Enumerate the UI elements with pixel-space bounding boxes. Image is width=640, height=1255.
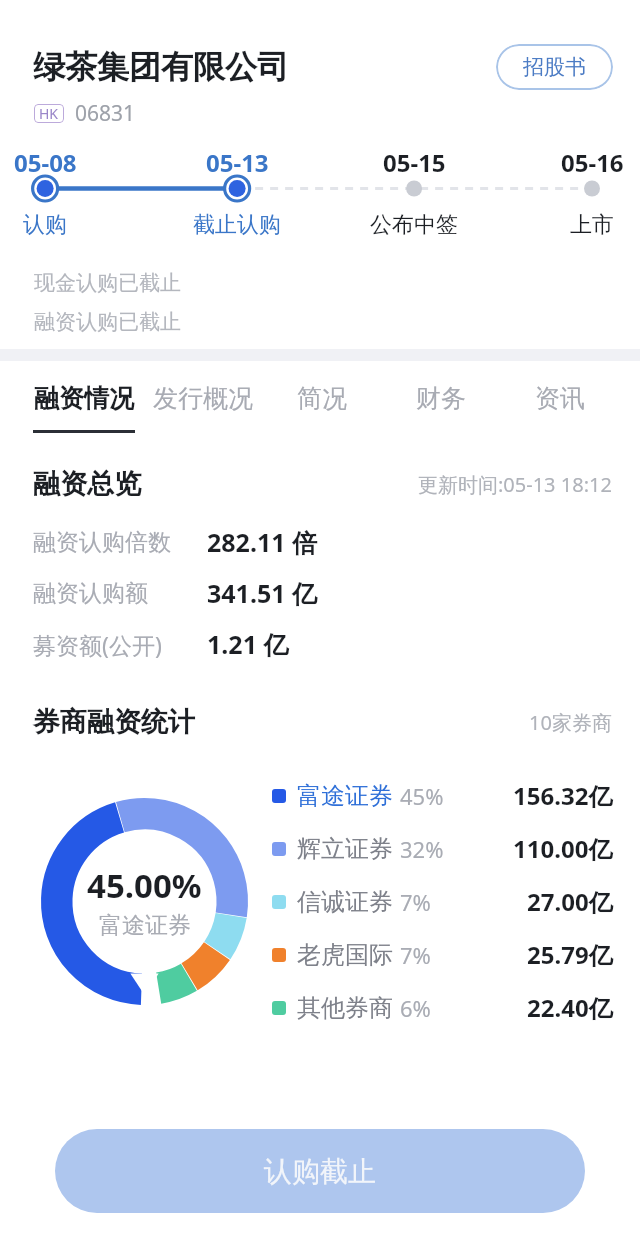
staticText: 110.00亿 (513, 832, 613, 865)
staticText: 341.51 亿 (207, 576, 318, 610)
button[interactable]: 老虎国际 (272, 928, 613, 981)
staticText: 05-08 (14, 146, 77, 179)
staticText: HK (39, 104, 59, 123)
staticText: 融资认购倍数 (33, 528, 171, 557)
button[interactable]: 融资情况 (33, 361, 135, 439)
staticText: 融资总览 (33, 467, 141, 501)
staticText: 32% (400, 834, 444, 864)
staticText: 绿茶集团有限公司 (33, 47, 289, 87)
button[interactable]: 辉立证券 (272, 822, 613, 875)
other: 券商融资占比图 (41, 798, 248, 1005)
staticText: 募资额(公开) (33, 629, 162, 660)
staticText: 7% (400, 940, 431, 970)
staticText: 156.32亿 (513, 779, 613, 812)
staticText: 22.40亿 (527, 991, 613, 1024)
staticText: 辉立证券 (297, 834, 393, 864)
staticText: 公布中签 (370, 211, 458, 239)
staticText: 信诚证券 (297, 887, 393, 917)
staticText: 7% (400, 887, 431, 917)
staticText: 融资认购已截止 (34, 309, 181, 335)
button[interactable]: 富途证券 (272, 769, 613, 822)
button[interactable]: 招股书 (496, 44, 613, 90)
staticText: 05-13 (206, 146, 269, 179)
staticText: 其他券商 (297, 993, 393, 1023)
staticText: 资讯 (535, 383, 585, 414)
staticText: 05-15 (383, 146, 446, 179)
button[interactable]: 信诚证券 (272, 875, 613, 928)
staticText: 25.79亿 (527, 938, 613, 971)
staticText: 更新时间:05-13 18:12 (418, 471, 612, 498)
staticText: 富途证券 (99, 911, 191, 940)
staticText: 05-16 (561, 146, 624, 179)
button[interactable]: 资讯 (509, 361, 611, 439)
staticText: 发行概况 (153, 383, 253, 414)
button[interactable]: 其他券商 (272, 981, 613, 1034)
staticText: 简况 (297, 383, 347, 414)
staticText: 06831 (75, 99, 136, 128)
staticText: 6% (400, 993, 431, 1023)
staticText: 282.11 倍 (207, 525, 318, 559)
staticText: 认购 (23, 211, 67, 239)
button[interactable]: 认购截止 (55, 1129, 585, 1213)
staticText: 融资认购额 (33, 579, 148, 608)
button[interactable]: 发行概况 (152, 361, 254, 439)
staticText: 45% (400, 781, 444, 811)
staticText: 财务 (416, 383, 466, 414)
staticText: 1.21 亿 (207, 627, 289, 661)
button[interactable]: 财务 (390, 361, 492, 439)
staticText: 招股书 (523, 54, 586, 80)
staticText: 认购截止 (264, 1154, 376, 1189)
staticText: 27.00亿 (527, 885, 613, 918)
staticText: 截止认购 (193, 211, 281, 239)
staticText: 富途证券 (297, 781, 393, 811)
staticText: 45.00% (87, 863, 202, 908)
staticText: 10家券商 (529, 709, 612, 736)
staticText: 老虎国际 (297, 940, 393, 970)
staticText: 上市 (570, 211, 614, 239)
staticText: 融资情况 (34, 383, 134, 414)
button[interactable]: 简况 (271, 361, 373, 439)
staticText: 现金认购已截止 (34, 270, 181, 296)
staticText: 券商融资统计 (33, 705, 195, 739)
